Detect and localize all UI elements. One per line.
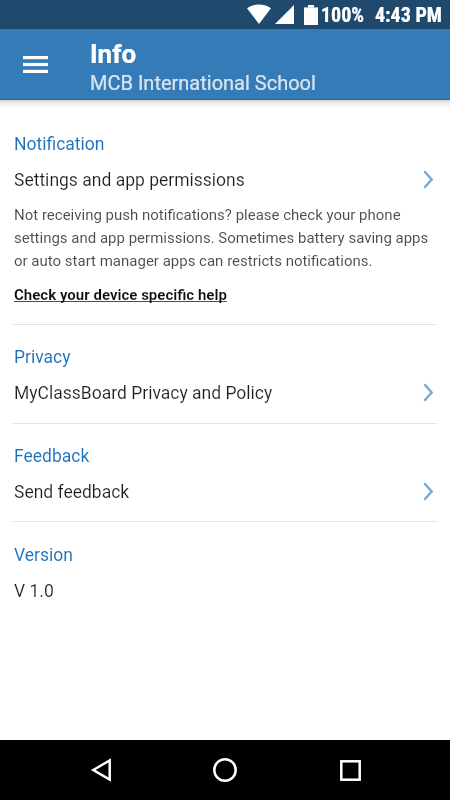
staticText: Settings and app permissions [14,170,423,191]
staticText: 100% [321,3,365,26]
button[interactable]: Back [77,746,125,794]
staticText: MyClassBoard Privacy and Policy [14,383,423,404]
staticText: Send feedback [14,482,423,503]
button[interactable]: Check your device specific help [14,286,227,304]
staticText: MCB International School [90,71,316,94]
button[interactable]: Recent apps [326,746,374,794]
button[interactable]: Settings and app permissions [0,160,450,201]
button[interactable]: MyClassBoard Privacy and Policy [0,373,450,414]
staticText: V 1.0 [14,581,54,602]
staticText: Feedback [14,446,90,467]
staticText: Not receiving push notifications? please… [14,206,432,270]
staticText: Notification [14,134,105,155]
staticText: Info [90,39,137,69]
button[interactable]: Send feedback [0,472,450,513]
staticText: Privacy [14,347,71,368]
staticText: Version [14,545,73,566]
button[interactable]: Open navigation menu [10,39,60,89]
staticText: 4:43 PM [375,3,442,26]
button[interactable]: Home [201,746,249,794]
